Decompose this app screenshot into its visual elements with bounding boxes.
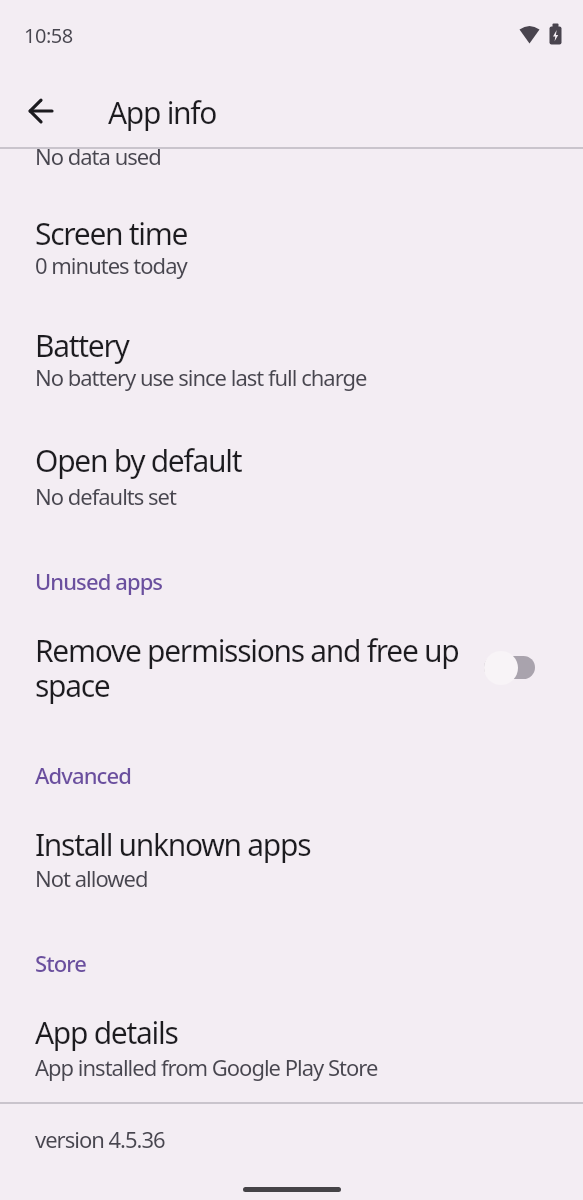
staticText: Remove permissions and free up space (35, 630, 459, 706)
button[interactable] (0, 408, 583, 520)
button[interactable] (0, 293, 583, 408)
staticText: App details (35, 1012, 178, 1053)
staticText: 10:58 (24, 22, 73, 49)
staticText: No battery use since last full charge (35, 362, 367, 392)
staticText: Unused apps (35, 566, 163, 596)
button[interactable] (0, 600, 583, 734)
staticText: version 4.5.36 (35, 1124, 165, 1154)
button[interactable] (16, 87, 64, 135)
staticText: Advanced (35, 760, 131, 790)
staticText: 0 minutes today (35, 250, 187, 280)
button[interactable] (0, 796, 583, 906)
staticText: No defaults set (35, 481, 176, 511)
staticText: Screen time (35, 213, 188, 254)
button[interactable] (0, 985, 583, 1103)
staticText: App info (108, 92, 217, 133)
button[interactable] (0, 180, 583, 293)
staticText: No data used (35, 141, 161, 171)
staticText: Open by default (35, 440, 242, 481)
staticText: Install unknown apps (35, 824, 311, 865)
staticText: Not allowed (35, 863, 148, 893)
staticText: App installed from Google Play Store (35, 1052, 378, 1082)
staticText: Store (35, 948, 86, 978)
staticText: Battery (35, 325, 129, 366)
